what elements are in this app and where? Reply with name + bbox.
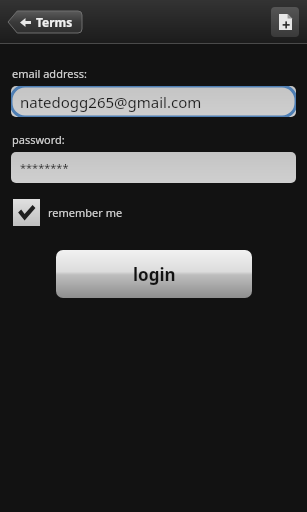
button[interactable]: Terms xyxy=(8,11,82,33)
staticText: ******** xyxy=(20,160,69,175)
button[interactable]: login xyxy=(56,250,252,298)
staticText: login xyxy=(133,263,176,286)
button[interactable]: New document xyxy=(271,7,299,37)
button[interactable]: remember me xyxy=(13,199,123,226)
staticText: email address: xyxy=(12,66,87,81)
staticText: password: xyxy=(12,132,65,147)
button[interactable]: ******** xyxy=(11,152,296,183)
staticText: natedogg265@gmail.com xyxy=(20,92,202,112)
button[interactable]: natedogg265@gmail.com xyxy=(11,86,296,117)
staticText: Terms xyxy=(36,14,73,30)
staticText: remember me xyxy=(48,205,123,220)
